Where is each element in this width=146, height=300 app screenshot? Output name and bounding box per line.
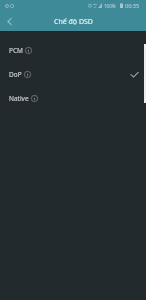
button[interactable]: Back [1,13,18,30]
button[interactable]: Native [0,86,146,110]
button[interactable]: About Native [31,92,38,104]
staticText: PCM [9,46,23,55]
staticText: 00:35 [125,2,140,9]
staticText: DoP [9,70,22,79]
button[interactable]: About PCM [25,44,32,56]
button[interactable]: DoP [0,62,146,86]
staticText: 100% [104,3,116,9]
staticText: Chế độ DSD [54,17,93,27]
staticText: Native [9,94,29,103]
button[interactable]: PCM [0,38,146,62]
button[interactable]: About DoP [24,68,31,80]
